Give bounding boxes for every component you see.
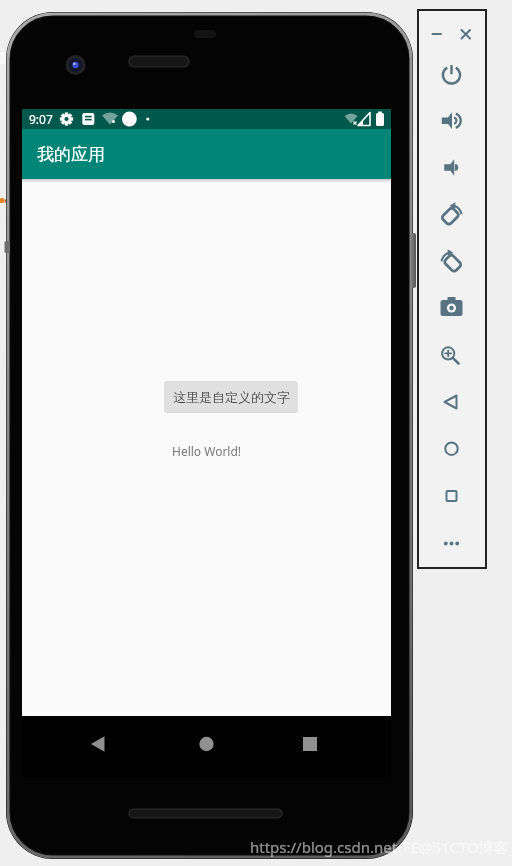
button[interactable]	[434, 150, 469, 184]
staticText: https://blog.csdn.net/FE@51CTO博客	[250, 837, 509, 857]
button[interactable]: 这里是自定义的文字	[164, 381, 298, 412]
button[interactable]	[434, 104, 469, 138]
button[interactable]	[434, 338, 469, 372]
staticText: 这里是自定义的文字	[173, 389, 290, 405]
button[interactable]	[454, 23, 476, 45]
button[interactable]	[434, 479, 469, 513]
button[interactable]	[434, 432, 469, 466]
button[interactable]	[434, 244, 469, 278]
button[interactable]	[423, 23, 445, 45]
button[interactable]	[434, 197, 469, 231]
button[interactable]	[434, 291, 469, 325]
button[interactable]	[84, 724, 124, 764]
staticText: Hello World!	[172, 443, 242, 459]
button[interactable]	[434, 385, 469, 419]
staticText: 9:07	[29, 111, 53, 127]
staticText: 我的应用	[37, 144, 105, 165]
button[interactable]	[186, 724, 226, 764]
button[interactable]	[434, 58, 469, 92]
button[interactable]	[434, 526, 469, 560]
button[interactable]	[290, 724, 330, 764]
